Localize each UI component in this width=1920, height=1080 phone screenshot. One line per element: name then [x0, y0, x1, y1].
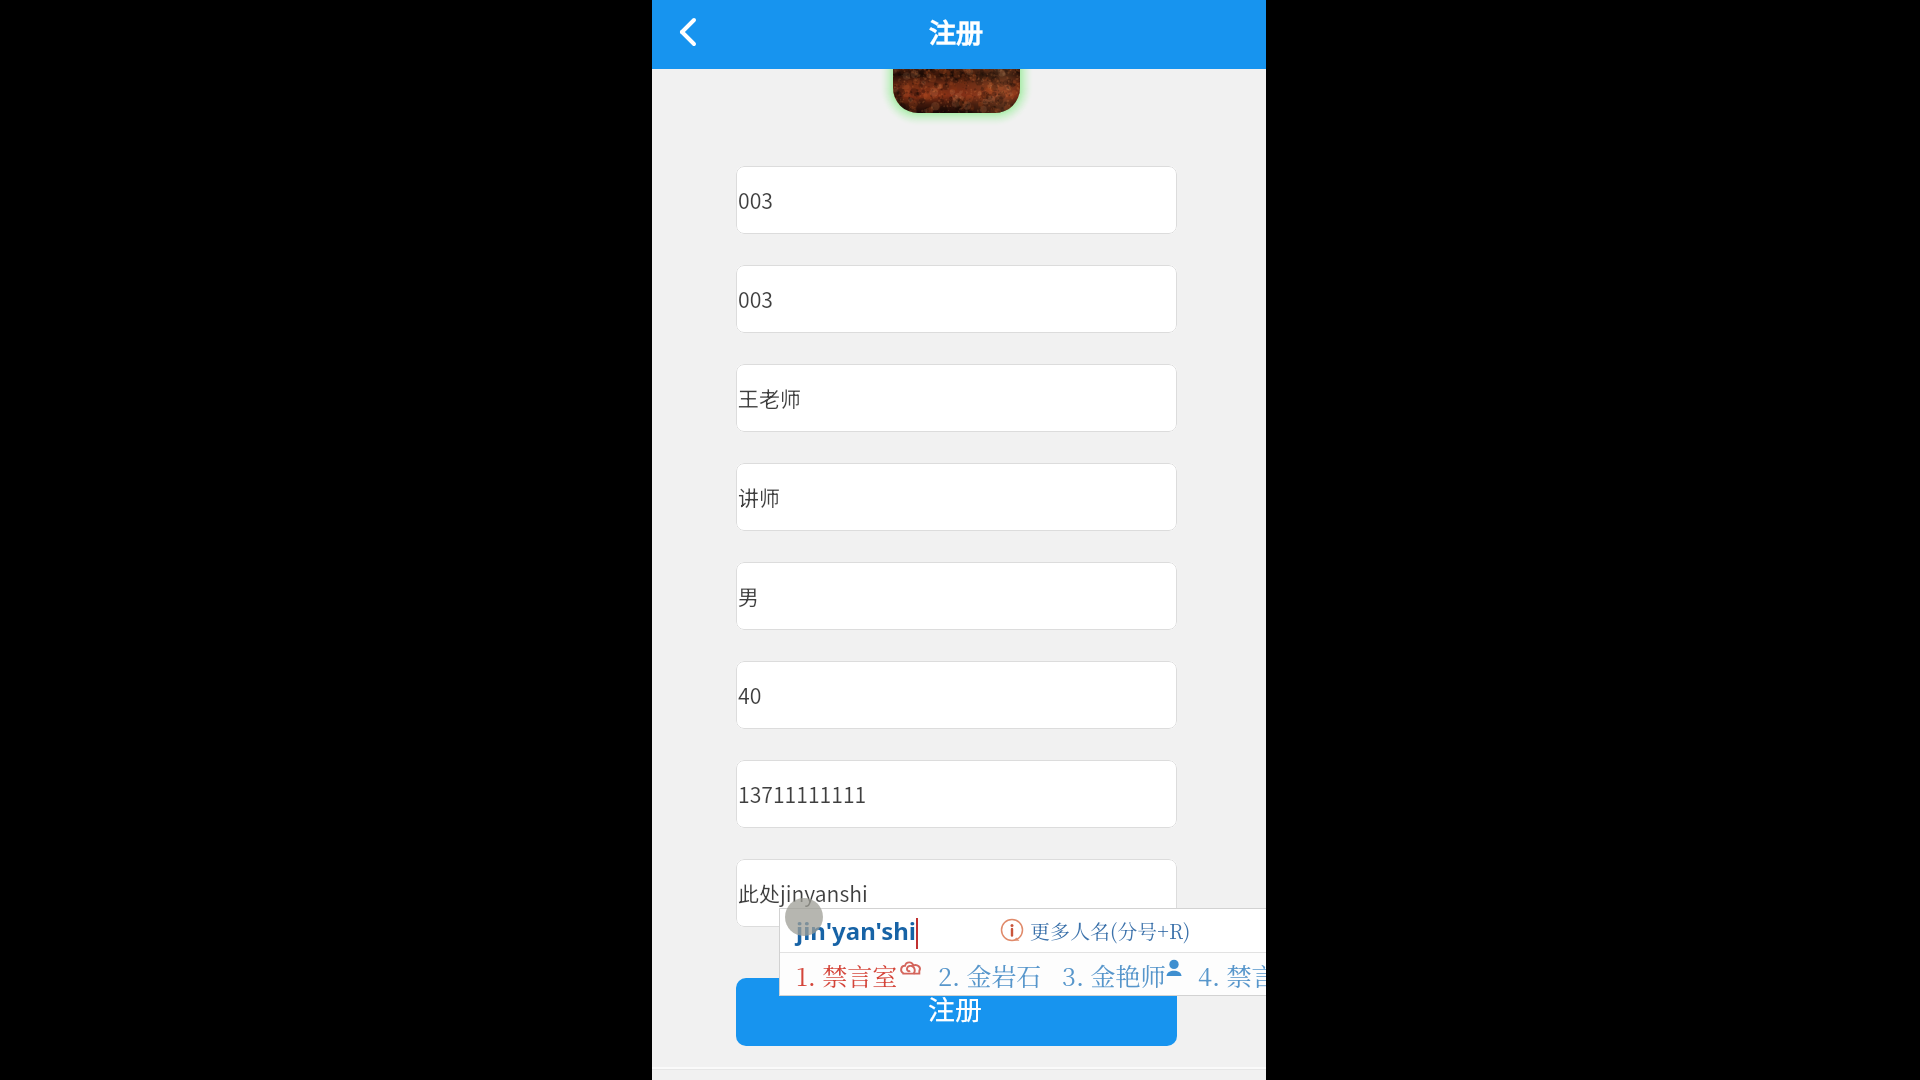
button[interactable]: 3. 金艳师	[1055, 953, 1187, 996]
button[interactable]: 此处jinyanshi	[736, 859, 1177, 927]
staticText: 1. 禁言室	[796, 957, 898, 993]
staticText: 此处jinyanshi	[738, 878, 868, 908]
staticText: 注册	[929, 12, 983, 51]
staticText: 王老师	[738, 383, 801, 413]
staticText: jin'yan'shi	[796, 914, 916, 947]
button[interactable]: 注册	[736, 978, 1177, 1046]
button[interactable]: 003	[736, 166, 1177, 234]
button[interactable]: 13711111111	[736, 760, 1177, 828]
staticText: 2. 金岩石	[938, 957, 1042, 993]
button[interactable]: 王老师	[736, 364, 1177, 432]
button[interactable]: Back	[654, 0, 710, 69]
staticText: 4. 禁言	[1198, 957, 1277, 993]
staticText: 3. 金艳师	[1062, 957, 1166, 993]
button[interactable]: 男	[736, 562, 1177, 630]
staticText: 003	[738, 185, 773, 215]
button[interactable]: Profile photo	[893, 0, 1020, 113]
staticText: 40	[738, 680, 762, 710]
staticText: 更多人名(分号+R)	[1030, 916, 1191, 945]
staticText: 男	[738, 581, 759, 611]
staticText: 讲师	[738, 482, 780, 512]
staticText: 13711111111	[738, 779, 867, 809]
button[interactable]: 40	[736, 661, 1177, 729]
button[interactable]: 2. 金岩石	[931, 953, 1049, 996]
button[interactable]: More names (semicolon + R)	[995, 908, 1195, 952]
button[interactable]: 1. 禁言室	[789, 953, 924, 996]
button[interactable]: 003	[736, 265, 1177, 333]
staticText: 注册	[928, 989, 982, 1028]
button[interactable]: 讲师	[736, 463, 1177, 531]
button[interactable]: 4. 禁言	[1191, 953, 1301, 996]
staticText: 003	[738, 284, 773, 314]
